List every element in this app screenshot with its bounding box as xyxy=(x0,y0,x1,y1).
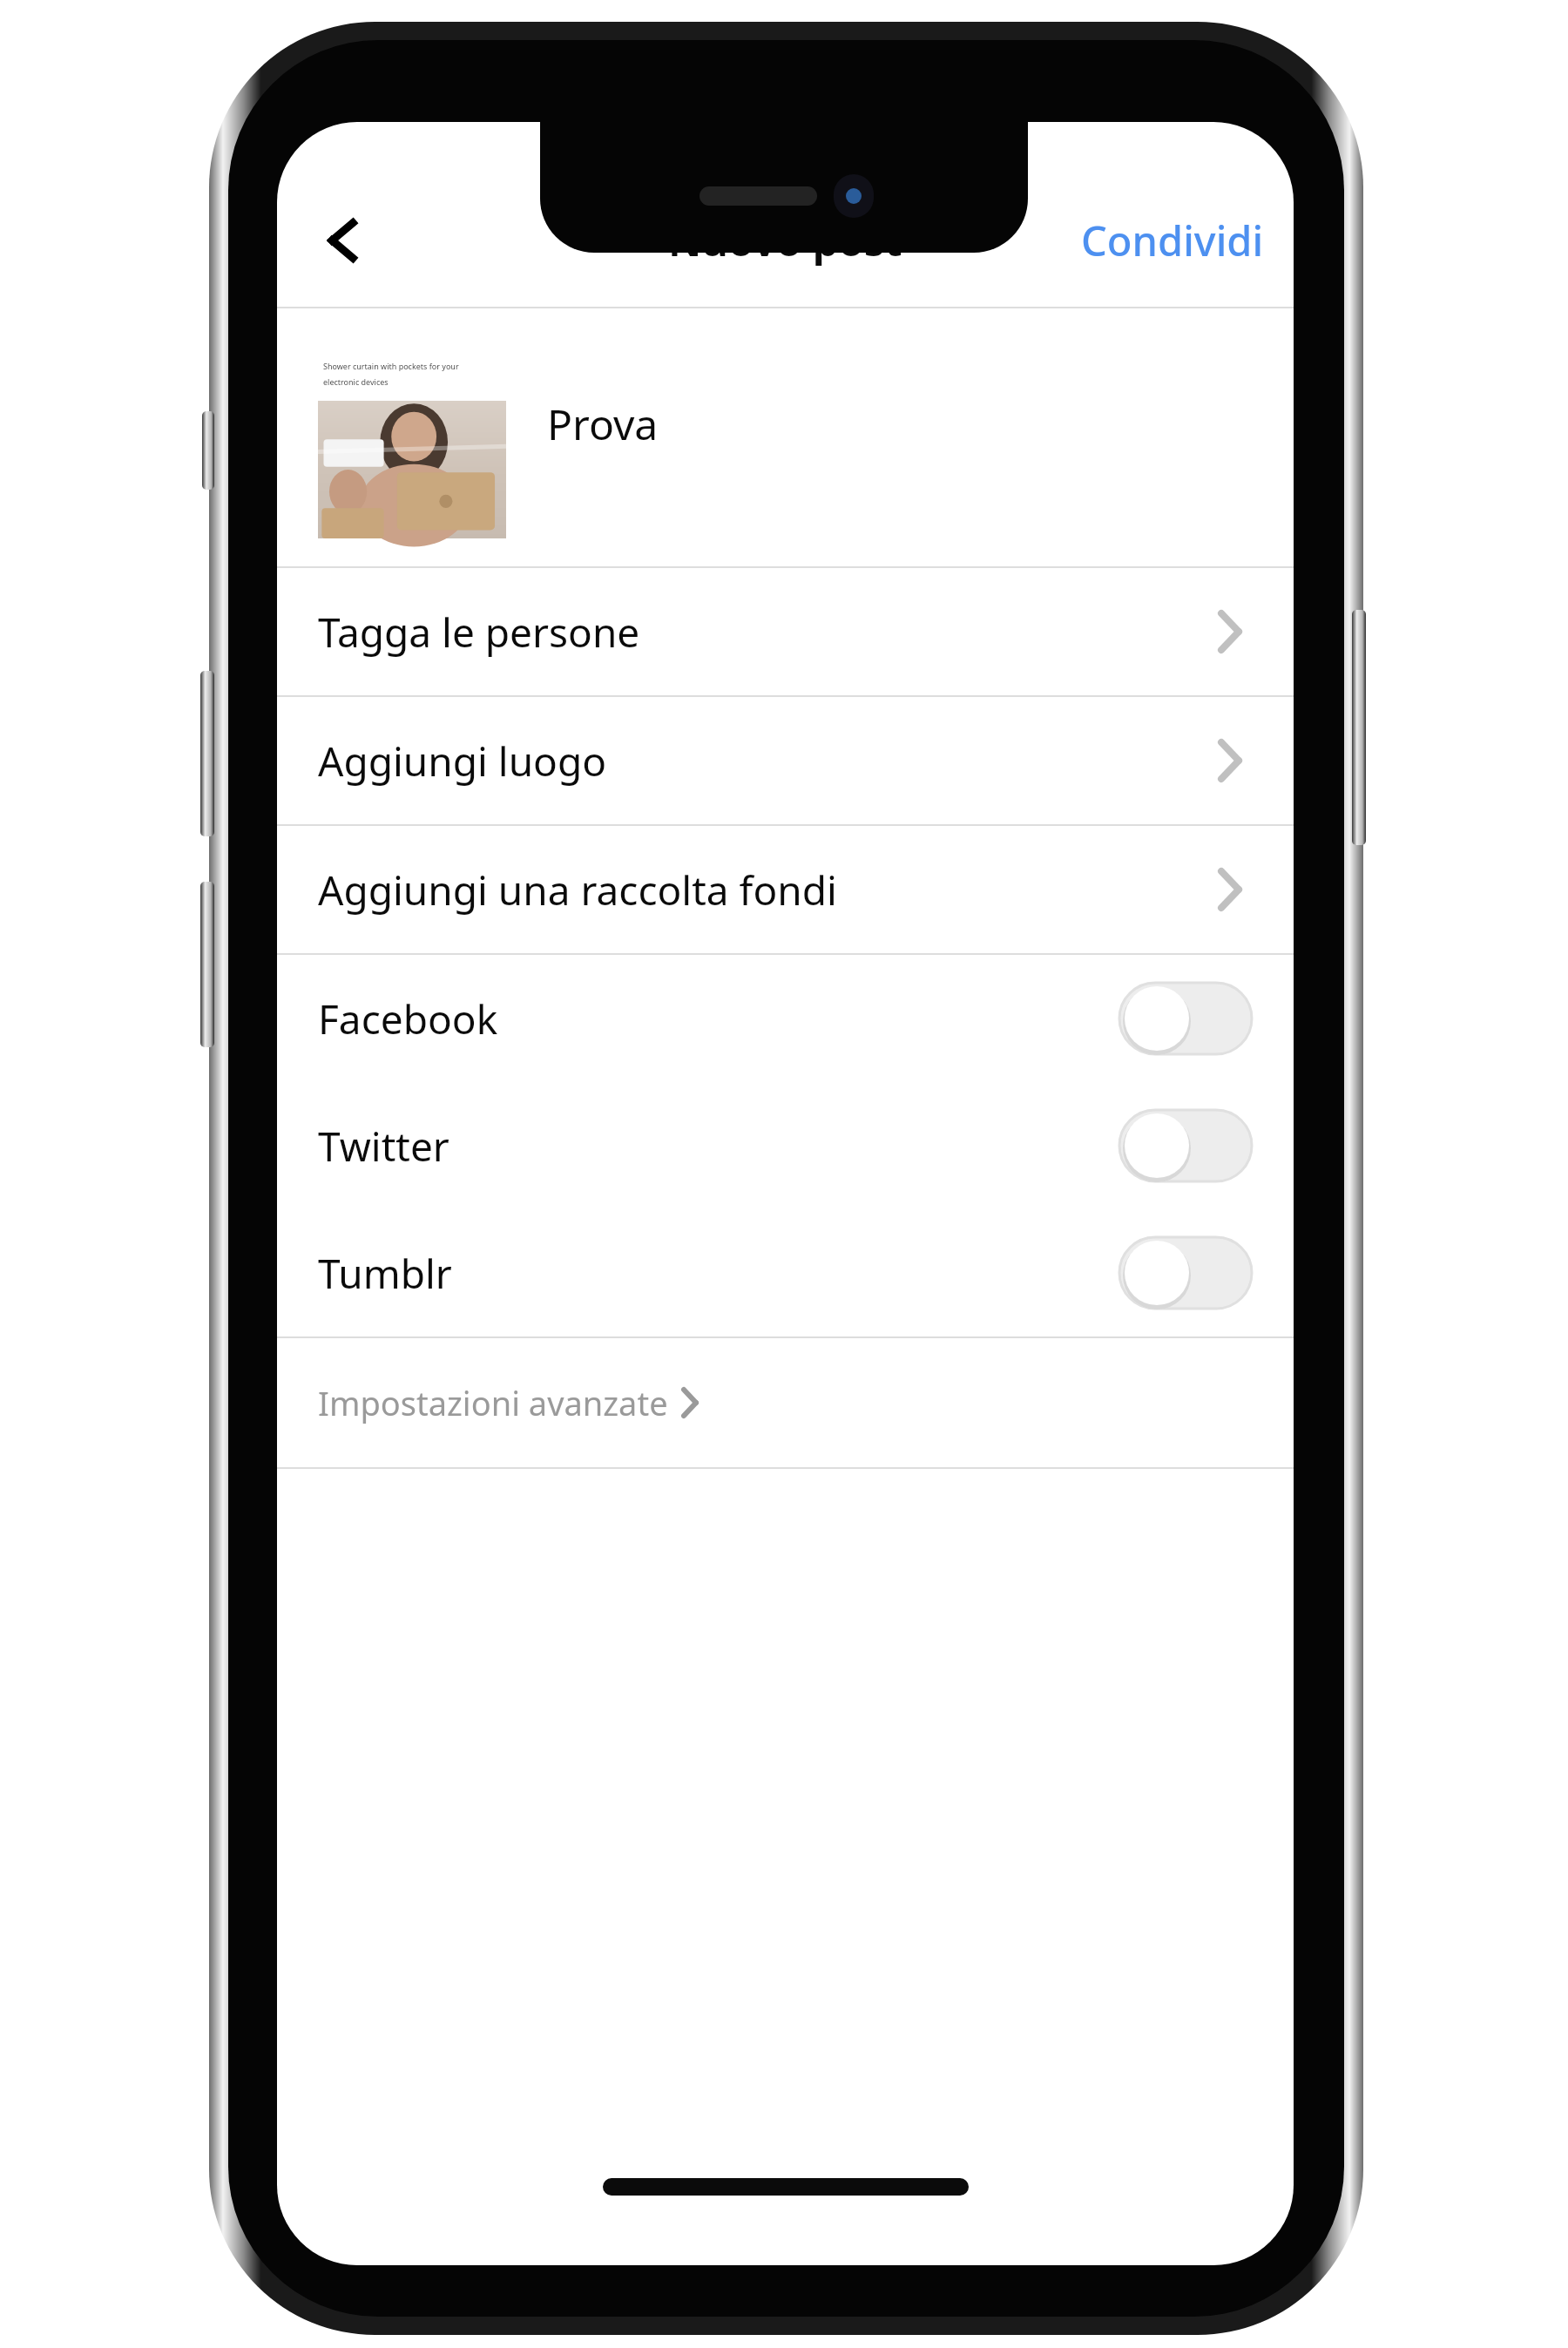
button[interactable]: Facebook xyxy=(277,955,1294,1082)
button[interactable]: Tumblr xyxy=(277,1209,1294,1336)
staticText: Twitter xyxy=(318,1119,449,1174)
staticText: electronic devices xyxy=(323,376,389,387)
staticText: Impostazioni avanzate xyxy=(318,1380,668,1425)
button[interactable]: Indietro xyxy=(296,193,392,288)
staticText: Shower curtain with pockets for your xyxy=(323,361,459,371)
staticText: Condividi xyxy=(1081,213,1264,268)
button[interactable]: Twitter xyxy=(277,1082,1294,1209)
staticText: Tagga le persone xyxy=(318,605,640,660)
button[interactable]: Aggiungi luogo xyxy=(277,697,1294,824)
staticText: Aggiungi luogo xyxy=(318,734,607,788)
button[interactable]: Condividi xyxy=(1051,197,1294,284)
staticText: Facebook xyxy=(318,991,498,1046)
button[interactable]: Impostazioni avanzate xyxy=(277,1338,1294,1467)
staticText: Nuovo post xyxy=(668,213,902,268)
button[interactable]: Aggiungi una raccolta fondi xyxy=(277,826,1294,953)
button[interactable]: Shower curtain with pockets for your xyxy=(277,308,1294,566)
staticText: Tumblr xyxy=(318,1246,452,1301)
button[interactable]: Tagga le persone xyxy=(277,568,1294,695)
staticText: Aggiungi una raccolta fondi xyxy=(318,863,837,917)
staticText: Prova xyxy=(547,396,659,452)
